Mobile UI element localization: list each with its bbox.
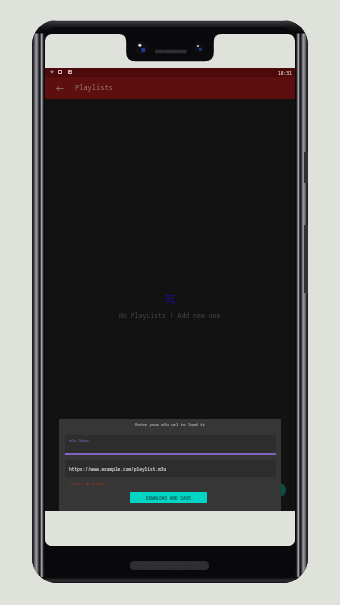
staticText: m3u Name [69, 438, 90, 444]
staticText: Playlists [75, 83, 113, 93]
staticText: https://www.example.com/playlist.m3u [69, 466, 167, 472]
staticText: Enter your m3u url to load it [59, 422, 281, 427]
button[interactable]: Back [48, 77, 72, 99]
button[interactable]: Add playlist [272, 483, 286, 497]
staticText: DOWNLOAD AND SAVE [146, 495, 191, 501]
staticText: *Can't be blank [69, 481, 105, 486]
button[interactable]: DOWNLOAD AND SAVE [130, 492, 207, 503]
staticText: No PlayLists ! Add new one [119, 311, 221, 320]
staticText: 18:31 [278, 70, 292, 76]
